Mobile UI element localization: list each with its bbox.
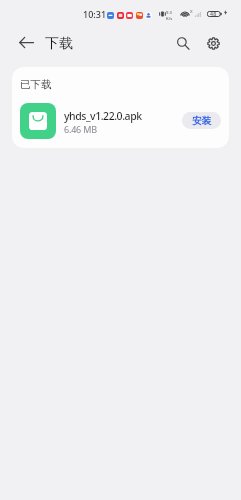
button[interactable]: Settings [200,30,226,56]
staticText: x [190,8,193,15]
staticText: 安装 [192,115,211,127]
staticText: K/s [166,16,173,22]
staticText: yhds_v1.22.0.apk [64,109,174,123]
staticText: 10:31 [83,8,107,20]
staticText: 6.46 MB [64,123,97,135]
button[interactable]: 安装 [182,112,221,129]
button[interactable]: Search [170,30,196,56]
staticText: 下载 [45,35,73,53]
button[interactable]: yhds_v1.22.0.apk [12,97,229,148]
staticText: 48 [210,10,217,17]
staticText: 已下载 [20,78,52,91]
button[interactable]: Back [13,29,39,55]
staticText: 9.3 [166,10,172,16]
